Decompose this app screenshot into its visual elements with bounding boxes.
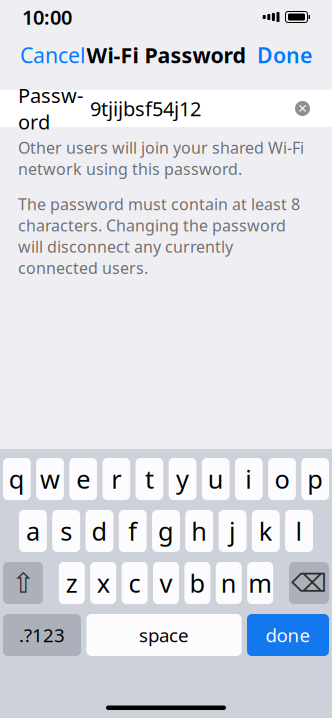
- button[interactable]: v: [153, 562, 179, 604]
- button[interactable]: r: [102, 458, 130, 500]
- staticText: Cancel: [20, 41, 86, 69]
- staticText: space: [139, 623, 189, 647]
- button[interactable]: x: [90, 562, 116, 604]
- staticText: i: [245, 462, 252, 496]
- staticText: 9tjijbsf54j12: [90, 95, 201, 122]
- staticText: b: [189, 566, 205, 600]
- button[interactable]: space: [86, 614, 242, 656]
- button[interactable]: c: [122, 562, 148, 604]
- staticText: u: [208, 462, 224, 496]
- button[interactable]: k: [252, 510, 280, 552]
- staticText: l: [296, 514, 303, 548]
- button[interactable]: done: [247, 614, 329, 656]
- button[interactable]: g: [152, 510, 180, 552]
- staticText: 10:00: [22, 4, 72, 30]
- button[interactable]: s: [52, 510, 80, 552]
- staticText: j: [229, 514, 236, 548]
- staticText: s: [60, 514, 72, 548]
- button[interactable]: b: [184, 562, 210, 604]
- staticText: Other users will join your shared Wi-Fi …: [18, 137, 304, 179]
- button[interactable]: d: [85, 510, 113, 552]
- button[interactable]: Clear password: [291, 97, 314, 120]
- button[interactable]: h: [185, 510, 213, 552]
- staticText: r: [111, 462, 121, 496]
- staticText: p: [307, 462, 323, 496]
- button[interactable]: w: [36, 458, 64, 500]
- staticText: ⇧: [11, 567, 34, 599]
- button[interactable]: f: [119, 510, 147, 552]
- staticText: v: [159, 566, 172, 600]
- staticText: a: [26, 514, 40, 548]
- staticText: n: [221, 566, 237, 600]
- button[interactable]: o: [268, 458, 296, 500]
- staticText: o: [274, 462, 289, 496]
- staticText: c: [129, 566, 141, 600]
- button[interactable]: l: [285, 510, 313, 552]
- staticText: x: [97, 566, 110, 600]
- staticText: Done: [257, 41, 312, 69]
- button[interactable]: y: [169, 458, 196, 500]
- button[interactable]: q: [3, 458, 31, 500]
- staticText: k: [259, 514, 273, 548]
- staticText: h: [191, 514, 207, 548]
- button[interactable]: t: [136, 458, 163, 500]
- button[interactable]: n: [216, 562, 242, 604]
- staticText: q: [9, 462, 25, 496]
- button[interactable]: a: [19, 510, 47, 552]
- staticText: t: [145, 462, 154, 496]
- staticText: .?123: [19, 623, 65, 647]
- staticText: f: [128, 514, 137, 548]
- button[interactable]: Done: [253, 33, 316, 77]
- staticText: z: [66, 566, 78, 600]
- staticText: ✕: [297, 102, 307, 115]
- button[interactable]: z: [59, 562, 85, 604]
- button[interactable]: Shift: [3, 562, 43, 604]
- staticText: w: [40, 462, 60, 496]
- button[interactable]: j: [219, 510, 246, 552]
- button[interactable]: i: [235, 458, 263, 500]
- button[interactable]: m: [247, 562, 273, 604]
- button[interactable]: e: [69, 458, 97, 500]
- staticText: e: [76, 462, 90, 496]
- staticText: g: [158, 514, 174, 548]
- staticText: d: [91, 514, 107, 548]
- staticText: ⌫: [291, 569, 327, 597]
- staticText: Password: [18, 82, 83, 135]
- button[interactable]: u: [202, 458, 229, 500]
- staticText: m: [248, 566, 272, 600]
- button[interactable]: Delete: [289, 562, 329, 604]
- staticText: The password must contain at least 8 cha…: [18, 193, 300, 278]
- button[interactable]: .?123: [3, 614, 81, 656]
- button[interactable]: Cancel: [16, 33, 90, 77]
- staticText: y: [176, 462, 189, 496]
- button[interactable]: p: [301, 458, 329, 500]
- staticText: Wi-Fi Password: [86, 41, 245, 69]
- staticText: done: [265, 623, 310, 647]
